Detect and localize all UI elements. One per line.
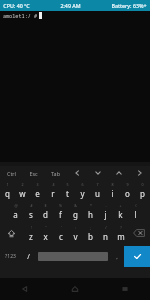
staticText: " [45, 225, 47, 230]
button[interactable]: Down arrow [87, 166, 108, 180]
button[interactable]: Up arrow [108, 166, 129, 180]
button[interactable]: ( [128, 201, 143, 222]
button[interactable]: $ [38, 201, 53, 222]
staticText: h [88, 209, 93, 220]
button[interactable]: Esc [22, 166, 44, 180]
staticText: 6 [81, 182, 84, 187]
button[interactable]: 3 [30, 180, 45, 201]
staticText: CPU: 40 °C [3, 2, 30, 9]
staticText: Battery: 63%+ [111, 2, 147, 9]
button[interactable]: Recent apps [100, 278, 150, 300]
staticText: Ctrl [7, 170, 16, 177]
staticText: f [59, 209, 62, 220]
staticText: / [105, 225, 107, 230]
button[interactable]: Tab [44, 166, 66, 180]
staticText: s [29, 209, 33, 220]
button[interactable]: : [68, 222, 83, 244]
button[interactable]: - [98, 201, 113, 222]
staticText: k [118, 209, 123, 220]
staticText: b [88, 231, 93, 242]
button[interactable]: * [83, 201, 98, 222]
button[interactable]: @ [7, 201, 23, 222]
staticText: q [5, 188, 10, 199]
staticText: + [119, 203, 122, 208]
staticText: amolet1:/ # [1, 12, 39, 19]
staticText: i [111, 188, 114, 199]
button[interactable]: Back [0, 278, 50, 300]
staticText: & [74, 203, 77, 208]
staticText: ?123 [5, 253, 16, 260]
button[interactable]: Enter [124, 246, 150, 267]
staticText: g [73, 209, 78, 220]
staticText: v [73, 231, 78, 242]
button[interactable]: Left arrow [66, 166, 87, 180]
staticText: $ [44, 203, 47, 208]
staticText: 5 [66, 182, 69, 187]
button[interactable]: # [23, 201, 38, 222]
button[interactable]: & [68, 201, 83, 222]
button[interactable]: Shift [0, 222, 23, 244]
staticText: l [134, 209, 137, 220]
staticText: w [19, 188, 26, 199]
button[interactable]: / [98, 222, 113, 244]
staticText: p [140, 188, 145, 199]
staticText: z [29, 231, 33, 242]
staticText: , [116, 253, 118, 261]
button[interactable]: + [113, 201, 128, 222]
button[interactable]: Right arrow [129, 166, 150, 180]
button[interactable]: Home [50, 278, 100, 300]
staticText: 8 [111, 182, 114, 187]
staticText: 9 [126, 182, 129, 187]
button[interactable]: " [38, 222, 53, 244]
staticText: 1 [6, 182, 9, 187]
staticText: c [59, 231, 63, 242]
button[interactable]: ? [113, 222, 128, 244]
staticText: ! [31, 225, 32, 230]
button[interactable]: Ctrl [0, 166, 22, 180]
button[interactable]: ' [53, 222, 68, 244]
staticText: @ [14, 203, 18, 208]
staticText: / [27, 252, 30, 262]
staticText: o [125, 188, 130, 199]
button[interactable]: 7 [90, 180, 105, 201]
staticText: y [80, 188, 85, 199]
button[interactable]: 5 [60, 180, 75, 201]
staticText: ? [120, 225, 122, 230]
button[interactable]: 9 [120, 180, 135, 201]
staticText: x [43, 231, 48, 242]
staticText: % [59, 203, 62, 208]
staticText: 2 [21, 182, 24, 187]
button[interactable]: 8 [105, 180, 120, 201]
staticText: 3 [36, 182, 39, 187]
staticText: - [105, 203, 107, 208]
staticText: n [103, 231, 108, 242]
button[interactable]: Backspace [128, 222, 150, 244]
staticText: u [95, 188, 100, 199]
button[interactable]: 4 [45, 180, 60, 201]
button[interactable]: 0 [135, 180, 150, 201]
button[interactable]: 2 [15, 180, 30, 201]
button[interactable]: ! [23, 222, 38, 244]
staticText: ( [135, 203, 137, 208]
button[interactable]: ?123 [0, 246, 21, 267]
button[interactable]: 6 [75, 180, 90, 201]
staticText: * [90, 203, 92, 208]
staticText: e [35, 188, 40, 199]
staticText: : [75, 225, 76, 230]
button[interactable]: / [21, 246, 36, 267]
button[interactable]: % [53, 201, 68, 222]
staticText: ' [61, 225, 62, 230]
staticText: Esc [29, 170, 38, 177]
staticText: 2:49 AM [60, 2, 81, 9]
staticText: m [117, 231, 125, 242]
staticText: ; [90, 225, 91, 230]
staticText: 4 [52, 182, 55, 187]
staticText: # [30, 203, 33, 208]
staticText: j [104, 209, 107, 220]
button[interactable]: ; [83, 222, 98, 244]
staticText: t [66, 188, 69, 199]
staticText: d [43, 209, 48, 220]
button[interactable]: , [110, 246, 123, 267]
button[interactable]: 1 [0, 180, 15, 201]
